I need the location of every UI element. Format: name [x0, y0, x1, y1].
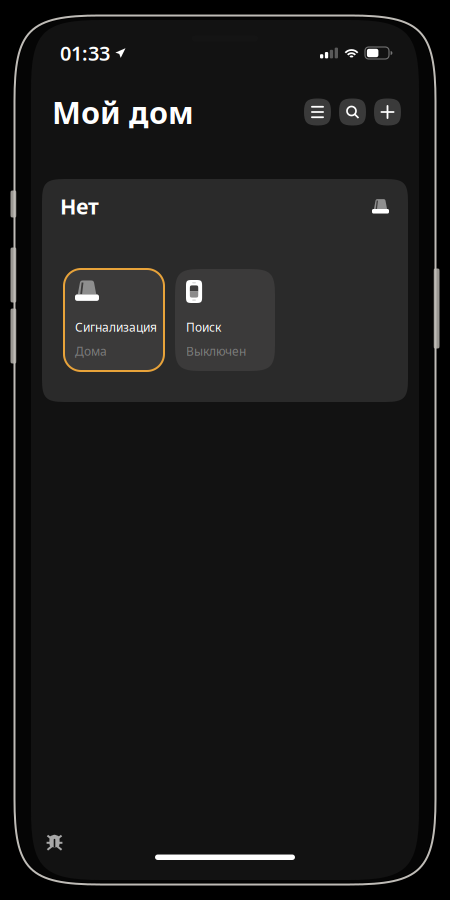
button[interactable]: Rooms	[304, 98, 331, 125]
button[interactable]: Сигнализация	[64, 269, 164, 371]
button[interactable]: Поиск	[175, 269, 275, 371]
button[interactable]: Search	[339, 98, 366, 125]
staticText: Мой дом	[52, 92, 194, 132]
staticText: Поиск	[186, 319, 221, 335]
staticText: Выключен	[186, 343, 246, 359]
staticText: Дома	[75, 343, 107, 359]
staticText: 01:33	[60, 40, 110, 66]
staticText: Нет	[60, 192, 99, 220]
button[interactable]: Add	[374, 98, 401, 125]
staticText: Сигнализация	[75, 319, 157, 335]
